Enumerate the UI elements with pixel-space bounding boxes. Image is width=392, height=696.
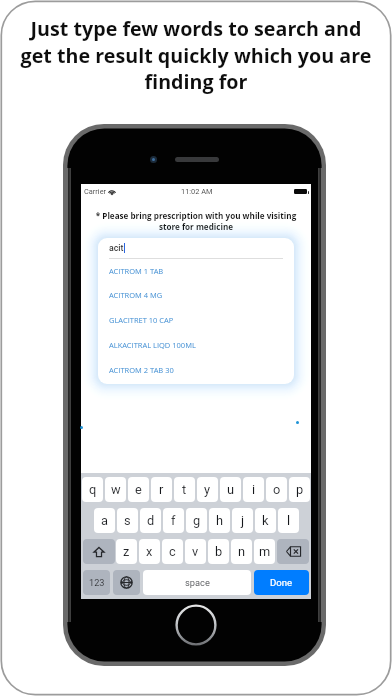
button[interactable]: ACITROM 1 TAB bbox=[98, 258, 294, 283]
button[interactable]: p bbox=[289, 477, 310, 502]
staticText: q bbox=[89, 482, 97, 497]
button[interactable]: s bbox=[117, 508, 138, 533]
button[interactable]: a bbox=[94, 508, 115, 533]
staticText: r bbox=[159, 482, 164, 497]
button[interactable]: l bbox=[278, 508, 299, 533]
staticText: 123 bbox=[89, 577, 105, 588]
staticText: GLACITRET 10 CAP bbox=[109, 315, 174, 325]
staticText: i bbox=[252, 482, 256, 497]
staticText: k bbox=[262, 513, 269, 528]
staticText: l bbox=[287, 513, 291, 528]
staticText: n bbox=[238, 544, 246, 559]
staticText: Carrier bbox=[84, 187, 107, 196]
staticText: f bbox=[171, 513, 176, 528]
staticText: g bbox=[193, 513, 201, 528]
button[interactable]: z bbox=[116, 539, 137, 564]
button[interactable]: d bbox=[140, 508, 161, 533]
button[interactable]: e bbox=[128, 477, 149, 502]
staticText: o bbox=[273, 482, 281, 497]
button[interactable]: b bbox=[208, 539, 229, 564]
button[interactable]: acit bbox=[109, 238, 294, 258]
staticText: Done bbox=[270, 577, 293, 588]
button[interactable]: i bbox=[243, 477, 264, 502]
staticText: x bbox=[146, 544, 153, 559]
button[interactable]: k bbox=[255, 508, 276, 533]
button[interactable]: t bbox=[174, 477, 195, 502]
button[interactable]: u bbox=[220, 477, 241, 502]
staticText: a bbox=[101, 513, 108, 528]
button[interactable]: Backspace bbox=[277, 539, 309, 564]
staticText: Just type few words to search and get th… bbox=[16, 15, 376, 94]
staticText: c bbox=[169, 544, 176, 559]
button[interactable]: g bbox=[186, 508, 207, 533]
staticText: u bbox=[227, 482, 235, 497]
staticText: ACITROM 2 TAB 30 bbox=[109, 365, 174, 375]
staticText: w bbox=[111, 482, 121, 497]
staticText: y bbox=[204, 482, 211, 497]
staticText: e bbox=[135, 482, 142, 497]
button[interactable]: h bbox=[209, 508, 230, 533]
staticText: * Please bring prescription with you whi… bbox=[89, 210, 303, 232]
staticText: j bbox=[241, 513, 245, 528]
button[interactable]: y bbox=[197, 477, 218, 502]
button[interactable]: o bbox=[266, 477, 287, 502]
button[interactable]: f bbox=[163, 508, 184, 533]
staticText: z bbox=[123, 544, 130, 559]
staticText: 11:02 AM bbox=[181, 187, 213, 196]
button[interactable]: 123 bbox=[83, 570, 110, 595]
staticText: p bbox=[296, 482, 304, 497]
button[interactable]: space bbox=[143, 570, 251, 595]
button[interactable]: GLACITRET 10 CAP bbox=[98, 307, 294, 332]
staticText: ACITROM 1 TAB bbox=[109, 266, 164, 276]
button[interactable]: Switch keyboard bbox=[113, 570, 140, 595]
staticText: acit bbox=[109, 243, 124, 253]
button[interactable]: ALKACITRAL LIQD 100ML bbox=[98, 332, 294, 357]
button[interactable]: Shift bbox=[83, 539, 115, 564]
button[interactable]: ACITROM 2 TAB 30 bbox=[98, 357, 294, 382]
button[interactable]: q bbox=[82, 477, 103, 502]
staticText: ACITROM 4 MG bbox=[109, 290, 163, 300]
staticText: v bbox=[192, 544, 199, 559]
button[interactable]: v bbox=[185, 539, 206, 564]
button[interactable]: w bbox=[105, 477, 126, 502]
staticText: m bbox=[259, 544, 271, 559]
button[interactable]: j bbox=[232, 508, 253, 533]
staticText: t bbox=[182, 482, 187, 497]
button[interactable]: Done bbox=[254, 570, 309, 595]
button[interactable]: ACITROM 4 MG bbox=[98, 282, 294, 307]
button[interactable]: n bbox=[231, 539, 252, 564]
staticText: b bbox=[215, 544, 223, 559]
staticText: s bbox=[124, 513, 131, 528]
staticText: h bbox=[216, 513, 224, 528]
staticText: ALKACITRAL LIQD 100ML bbox=[109, 340, 196, 350]
staticText: d bbox=[147, 513, 155, 528]
button[interactable]: r bbox=[151, 477, 172, 502]
button[interactable]: c bbox=[162, 539, 183, 564]
button[interactable]: m bbox=[254, 539, 275, 564]
button[interactable]: x bbox=[139, 539, 160, 564]
staticText: space bbox=[185, 577, 210, 588]
